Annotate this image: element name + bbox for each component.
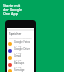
staticText: Backups <box>14 61 25 65</box>
button[interactable]: Sonstige <box>7 68 34 72</box>
staticText: Sonstige <box>14 68 25 72</box>
staticText: Starte mit der Google One App <box>3 3 24 16</box>
staticText: Google Fotos <box>14 40 31 44</box>
button[interactable]: Google Fotos <box>7 40 34 47</box>
button[interactable]: Google Drive <box>7 47 34 54</box>
staticText: Google Drive <box>14 47 30 51</box>
staticText: 2,1 GB <box>14 44 22 47</box>
staticText: 0,8 GB <box>14 58 22 61</box>
staticText: Speicher <box>9 32 22 36</box>
button[interactable]: Gmail <box>7 54 34 61</box>
staticText: 0,3 GB <box>14 65 22 68</box>
staticText: 1,2 GB <box>14 51 22 54</box>
button[interactable]: Backups <box>7 61 34 68</box>
staticText: Speicherplatz verwalten <box>9 37 32 40</box>
staticText: Gmail <box>14 54 22 58</box>
